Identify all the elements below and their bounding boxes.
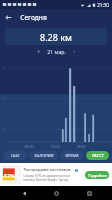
button[interactable]: Recents xyxy=(80,186,98,200)
staticText: 21 мар. xyxy=(47,48,66,55)
staticText: 21:30 xyxy=(97,2,109,8)
button[interactable]: Back xyxy=(15,186,33,200)
staticText: РАССТ xyxy=(92,153,104,158)
button[interactable]: Previous day xyxy=(34,47,43,56)
button[interactable]: 8.28 км xyxy=(5,28,107,45)
button[interactable]: Next day xyxy=(70,47,79,56)
button[interactable]: Home xyxy=(47,186,65,200)
staticText: Сегодня xyxy=(20,13,47,22)
staticText: 06:00 xyxy=(24,144,34,149)
staticText: 18:00 xyxy=(76,144,86,149)
button[interactable]: ШАГ xyxy=(3,151,27,160)
staticText: Подробнее xyxy=(88,173,107,178)
staticText: Скидка 57% на демисезонный xyxy=(23,174,70,178)
staticText: -57% xyxy=(2,172,15,179)
staticText: ШАГ xyxy=(11,153,20,158)
staticText: КАЛОРИИ xyxy=(34,153,54,158)
staticText: костюм Тритон Крафт. Тренд xyxy=(23,178,68,182)
button[interactable]: РАССТ xyxy=(86,151,109,160)
staticText: 8.28 км xyxy=(40,31,72,43)
staticText: ВРЕМЯ xyxy=(65,153,79,158)
button[interactable]: Back xyxy=(0,9,17,26)
button[interactable]: ВРЕМЯ xyxy=(60,151,84,160)
staticText: Распродажа костюмов... xyxy=(23,167,74,173)
button[interactable]: КАЛОРИИ xyxy=(29,151,58,160)
button[interactable]: -57% xyxy=(0,163,112,186)
button[interactable]: Подробнее xyxy=(85,171,109,179)
staticText: 12:00 xyxy=(50,144,60,149)
